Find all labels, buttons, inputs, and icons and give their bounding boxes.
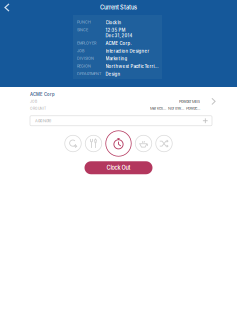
staticText: Powder Mills: [179, 99, 200, 104]
staticText: Add Note: [35, 118, 51, 123]
staticText: Current Status: [100, 4, 137, 11]
staticText: REGION: [77, 64, 91, 68]
staticText: ORG UNIT: [30, 106, 46, 110]
staticText: EMPLOYER: [77, 41, 96, 45]
button[interactable]: Meal break: [85, 135, 102, 152]
staticText: Northwest Pacific Territ…: [105, 64, 159, 69]
staticText: PUNCH: [77, 20, 91, 24]
staticText: ACME Corp: [30, 92, 55, 97]
button[interactable]: Clock Out: [84, 161, 152, 174]
staticText: Marketing: [105, 56, 127, 61]
staticText: JOB: [30, 99, 37, 103]
staticText: Design: [105, 71, 120, 77]
staticText: Marketi… Northw… Powde…: [150, 106, 200, 111]
staticText: Interaction Designer: [105, 48, 149, 54]
staticText: ACME Corp.: [105, 41, 131, 46]
staticText: Clock Out: [106, 164, 130, 171]
button[interactable]: Timer: [106, 131, 131, 156]
staticText: JOB: [77, 48, 84, 53]
staticText: DEPARTMENT: [77, 71, 101, 76]
staticText: DIVISION: [77, 56, 94, 61]
staticText: 12:35 PM: [105, 28, 125, 33]
button[interactable]: ACME Corp: [0, 87, 237, 111]
button[interactable]: Break: [135, 135, 152, 152]
staticText: SINCE: [77, 28, 88, 32]
button[interactable]: Transfer: [156, 135, 172, 152]
button[interactable]: Back: [0, 1, 20, 14]
button[interactable]: Return: [65, 135, 81, 152]
staticText: Dec 31, 2014: [105, 33, 132, 38]
staticText: Clock In: [105, 20, 121, 25]
